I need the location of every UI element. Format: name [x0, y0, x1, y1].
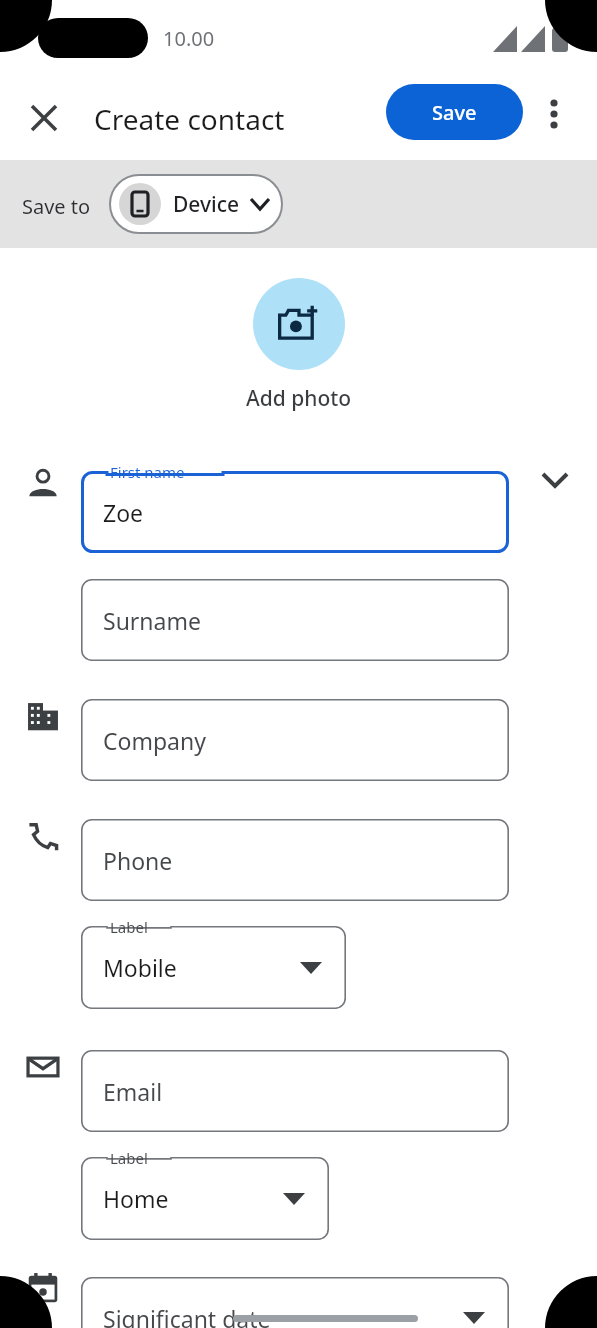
staticText: Label	[110, 917, 148, 937]
button[interactable]: Significant date	[81, 1277, 509, 1328]
button[interactable]: Label	[81, 926, 346, 1009]
button[interactable]: Label	[81, 1157, 329, 1240]
staticText: Label	[110, 1148, 148, 1168]
button[interactable]: Company	[81, 699, 509, 781]
staticText: Mobile	[103, 952, 177, 983]
staticText: Email	[103, 1076, 163, 1107]
staticText: Significant date	[103, 1303, 271, 1328]
button[interactable]: Surname	[81, 579, 509, 661]
staticText: Device	[173, 190, 240, 219]
button[interactable]: Save	[386, 84, 523, 140]
staticText: Save to	[22, 193, 91, 220]
button[interactable]: Email	[81, 1050, 509, 1132]
button[interactable]: More options	[530, 90, 578, 138]
button[interactable]: Close	[16, 90, 72, 146]
staticText: Add photo	[246, 384, 352, 413]
staticText: Home	[103, 1183, 169, 1214]
button[interactable]: Phone	[81, 819, 509, 901]
staticText: Zoe	[103, 497, 144, 528]
button[interactable]: Device	[110, 175, 282, 233]
button[interactable]: First name	[81, 471, 509, 553]
staticText: Create contact	[94, 100, 285, 138]
button[interactable]: Add photo	[0, 278, 597, 413]
button[interactable]: Expand name fields	[528, 453, 582, 507]
staticText: Save	[432, 99, 477, 126]
staticText: First name	[110, 462, 185, 482]
staticText: Company	[103, 725, 206, 756]
staticText: Phone	[103, 845, 173, 876]
staticText: 10.00	[163, 25, 215, 52]
staticText: Surname	[103, 605, 201, 636]
